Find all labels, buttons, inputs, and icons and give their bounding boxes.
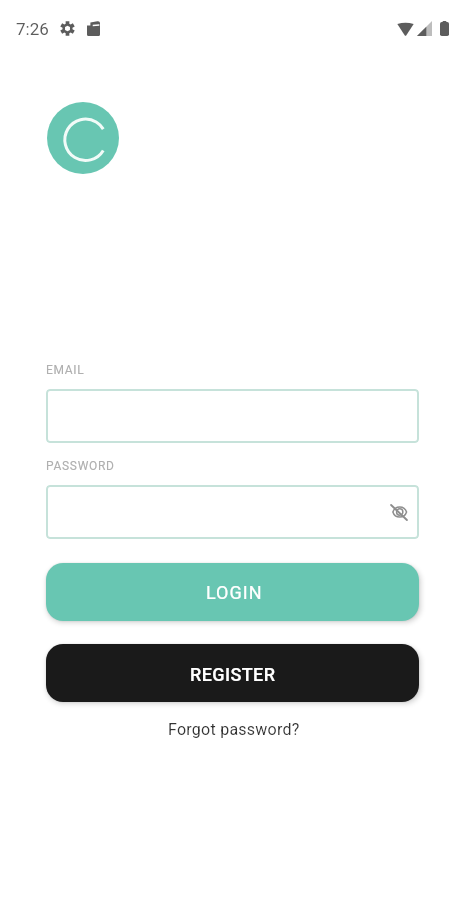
button[interactable]: LOGIN <box>46 563 419 621</box>
button[interactable]: Forgot password? <box>158 715 310 744</box>
button[interactable]: REGISTER <box>46 644 419 702</box>
staticText: 7:26 <box>16 19 49 39</box>
button[interactable]: Password input <box>46 485 419 539</box>
staticText: Forgot password? <box>168 720 300 739</box>
staticText: REGISTER <box>190 664 276 685</box>
staticText: EMAIL <box>46 363 85 377</box>
staticText: PASSWORD <box>46 459 115 473</box>
staticText: LOGIN <box>206 582 263 603</box>
button[interactable]: Toggle password visibility <box>381 494 417 530</box>
other: App logo <box>47 102 119 174</box>
button[interactable]: Email input <box>46 389 419 443</box>
